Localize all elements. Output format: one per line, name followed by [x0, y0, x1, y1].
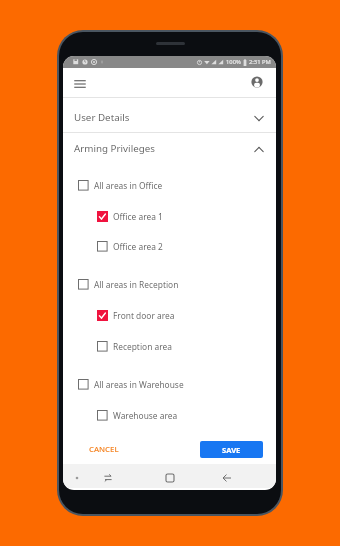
staticText: 100%: [226, 58, 241, 66]
staticText: All areas in Office: [94, 180, 163, 191]
button[interactable]: All areas in Office: [63, 173, 276, 197]
button[interactable]: User Details: [63, 101, 276, 134]
button[interactable]: All areas in Reception: [63, 272, 276, 296]
button[interactable]: Front door area: [63, 303, 276, 327]
button[interactable]: Warehouse area: [63, 403, 276, 427]
button[interactable]: SAVE: [200, 441, 263, 458]
staticText: All areas in Reception: [94, 279, 179, 290]
staticText: CANCEL: [89, 444, 119, 455]
staticText: 2:31 PM: [249, 58, 271, 66]
staticText: Warehouse area: [113, 410, 178, 421]
button[interactable]: Assistant: [66, 466, 88, 490]
button[interactable]: Arming Privileges: [63, 132, 276, 165]
staticText: User Details: [74, 111, 130, 124]
staticText: SAVE: [222, 445, 241, 455]
button[interactable]: All areas in Warehouse: [63, 372, 276, 396]
button[interactable]: Home: [159, 466, 181, 490]
staticText: All areas in Warehouse: [94, 379, 184, 390]
staticText: Reception area: [113, 341, 172, 352]
staticText: Arming Privileges: [74, 142, 155, 155]
staticText: Office area 1: [113, 211, 163, 222]
button[interactable]: Account: [250, 75, 264, 89]
button[interactable]: Back: [216, 466, 238, 490]
button[interactable]: Recent apps: [97, 466, 119, 490]
staticText: Office area 2: [113, 241, 163, 252]
button[interactable]: Office area 2: [63, 234, 276, 258]
button[interactable]: CANCEL: [83, 439, 125, 460]
button[interactable]: Office area 1: [63, 204, 276, 228]
button[interactable]: Open navigation menu: [72, 76, 88, 92]
button[interactable]: Reception area: [63, 334, 276, 358]
staticText: Front door area: [113, 310, 175, 321]
